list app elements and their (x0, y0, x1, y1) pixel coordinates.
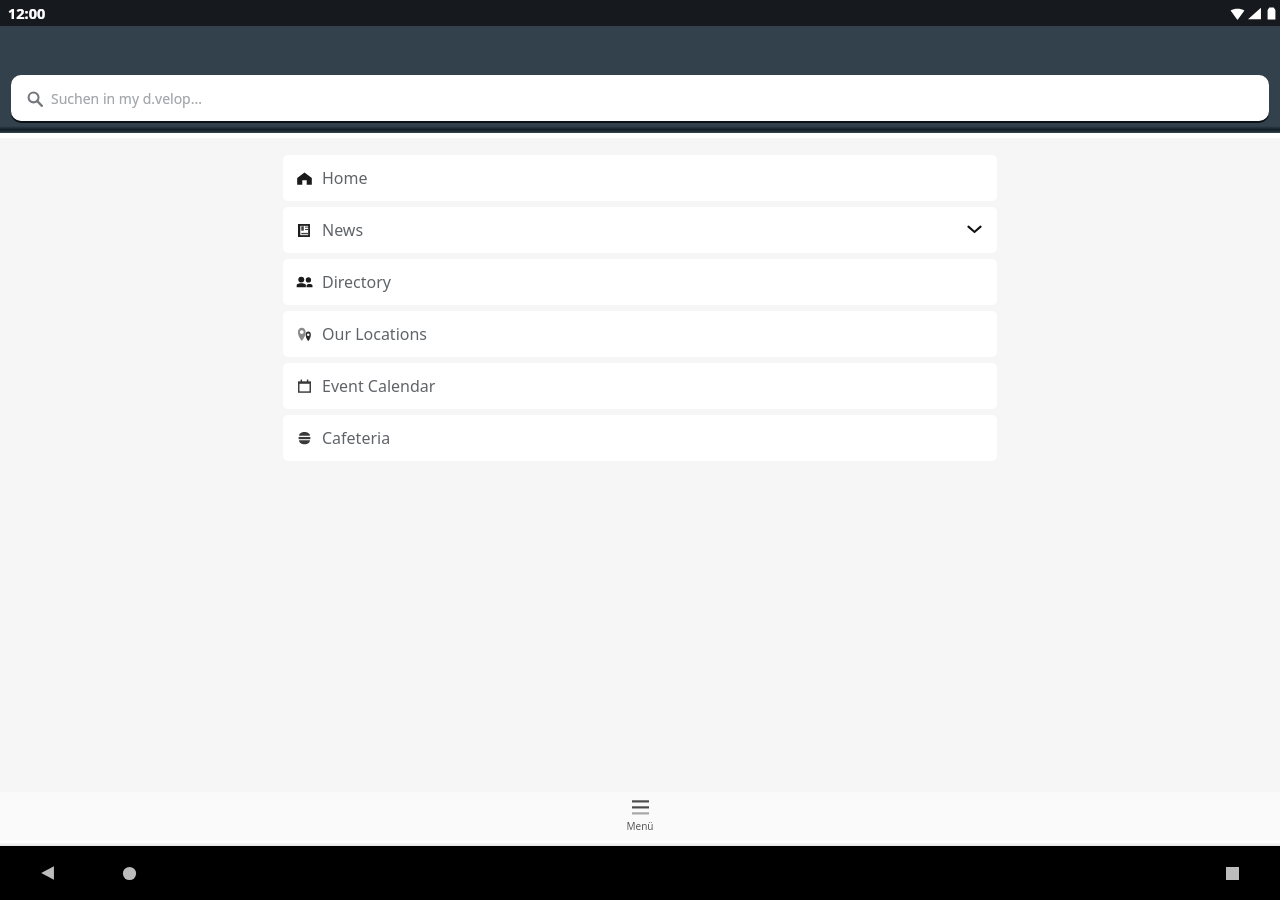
staticText: Suchen in my d.velop... (51, 89, 202, 108)
button[interactable]: Back (39, 864, 57, 882)
staticText: Our Locations (322, 323, 428, 345)
button[interactable]: News (283, 207, 997, 253)
staticText: Cafeteria (322, 427, 391, 449)
button[interactable]: Our Locations (283, 311, 997, 357)
staticText: News (322, 219, 364, 241)
staticText: Directory (322, 271, 392, 293)
staticText: Menü (626, 819, 654, 833)
staticText: Event Calendar (322, 375, 436, 397)
button[interactable]: Home (283, 155, 997, 201)
staticText: 12:00 (8, 3, 46, 23)
button[interactable]: Home (122, 866, 137, 881)
button[interactable]: Cafeteria (283, 415, 997, 461)
staticText: Home (322, 167, 368, 189)
button[interactable]: Directory (283, 259, 997, 305)
button[interactable]: Event Calendar (283, 363, 997, 409)
button[interactable]: Menü (600, 792, 680, 837)
button[interactable]: Suchen in my d.velop (11, 75, 1269, 121)
